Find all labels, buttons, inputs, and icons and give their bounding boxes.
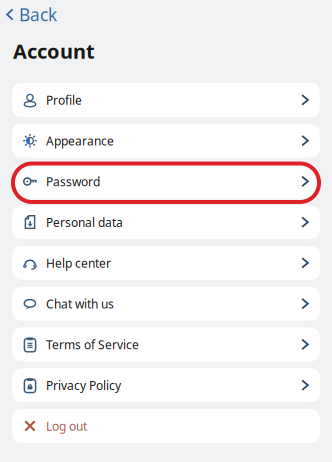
staticText: Chat with us xyxy=(46,296,114,312)
button[interactable]: Help center xyxy=(12,246,320,280)
button[interactable]: Privacy Policy xyxy=(12,368,320,402)
staticText: Back xyxy=(19,3,57,26)
button[interactable]: Log out xyxy=(12,409,320,443)
button[interactable]: Appearance xyxy=(12,124,320,158)
staticText: Privacy Policy xyxy=(46,377,121,393)
staticText: Appearance xyxy=(46,133,114,149)
staticText: Personal data xyxy=(46,214,123,230)
button[interactable]: Profile xyxy=(12,83,320,117)
button[interactable]: Password xyxy=(12,164,320,198)
button[interactable]: Personal data xyxy=(12,205,320,239)
staticText: Profile xyxy=(46,92,82,108)
staticText: Terms of Service xyxy=(46,336,139,352)
button[interactable]: Chat with us xyxy=(12,287,320,321)
staticText: Password xyxy=(46,173,100,189)
button[interactable]: Terms of Service xyxy=(12,327,320,361)
staticText: Account xyxy=(13,38,95,64)
staticText: Log out xyxy=(46,418,87,434)
button[interactable]: Back xyxy=(0,0,67,27)
staticText: Help center xyxy=(46,255,111,271)
